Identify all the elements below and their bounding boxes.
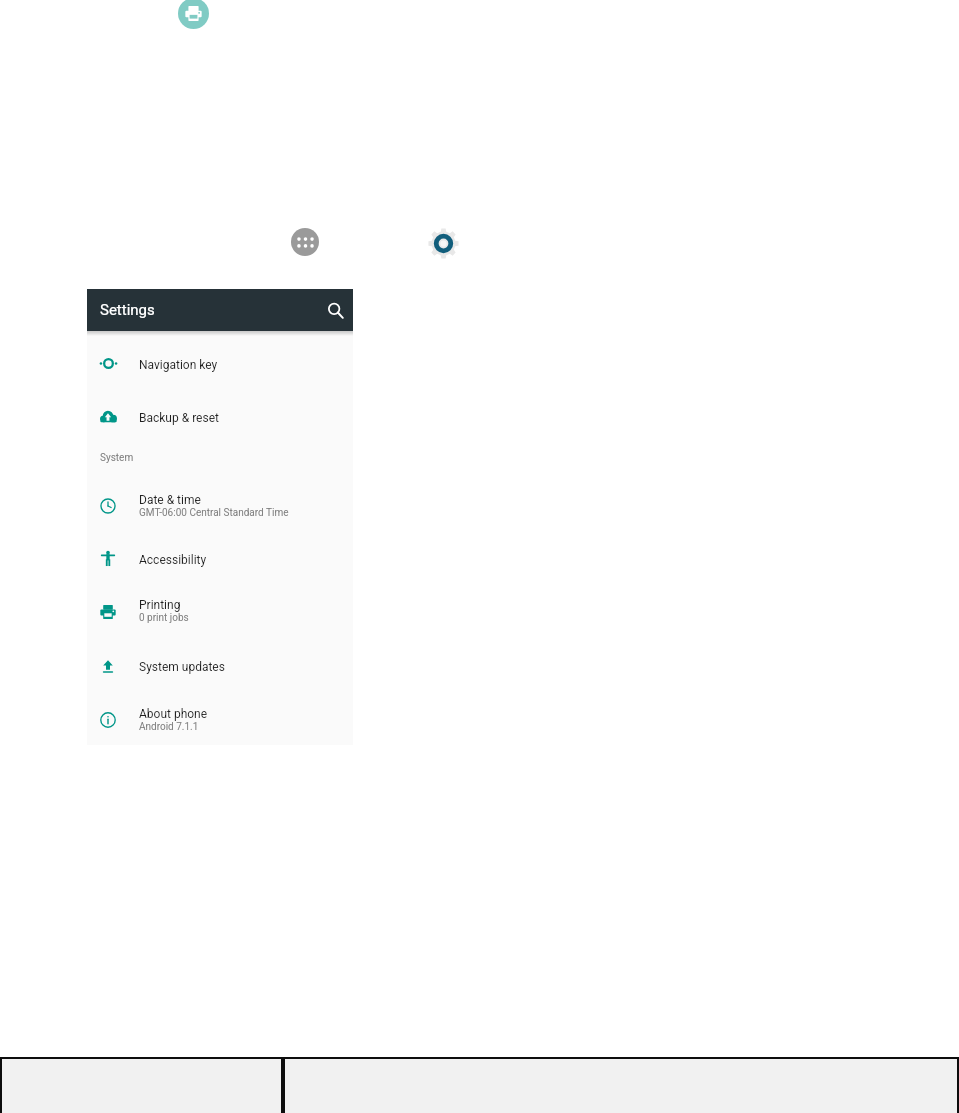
- button[interactable]: Accessibility: [87, 539, 353, 581]
- button[interactable]: Date & time: [87, 479, 353, 535]
- button[interactable]: Printing: [87, 584, 353, 640]
- button[interactable]: Settings: [428, 228, 459, 259]
- staticText: Navigation key: [139, 358, 218, 372]
- staticText: Android 7.1.1: [139, 721, 199, 733]
- button[interactable]: Backup & reset: [87, 397, 353, 439]
- staticText: GMT-06:00 Central Standard Time: [139, 507, 289, 519]
- staticText: 0 print jobs: [139, 612, 189, 624]
- staticText: Accessibility: [139, 553, 207, 567]
- staticText: Settings: [100, 301, 155, 319]
- button[interactable]: Print: [178, 0, 209, 29]
- staticText: System updates: [139, 660, 225, 674]
- button[interactable]: About phone: [87, 693, 353, 749]
- button[interactable]: Search: [324, 299, 346, 321]
- staticText: Printing: [139, 598, 181, 612]
- button[interactable]: System updates: [87, 646, 353, 688]
- button[interactable]: Settings: [87, 289, 353, 331]
- staticText: System: [100, 452, 134, 464]
- button[interactable]: All apps: [291, 228, 319, 256]
- staticText: Date & time: [139, 493, 201, 507]
- staticText: Backup & reset: [139, 411, 219, 425]
- button[interactable]: Navigation key: [87, 344, 353, 386]
- staticText: About phone: [139, 707, 208, 721]
- button[interactable]: System: [100, 452, 134, 464]
